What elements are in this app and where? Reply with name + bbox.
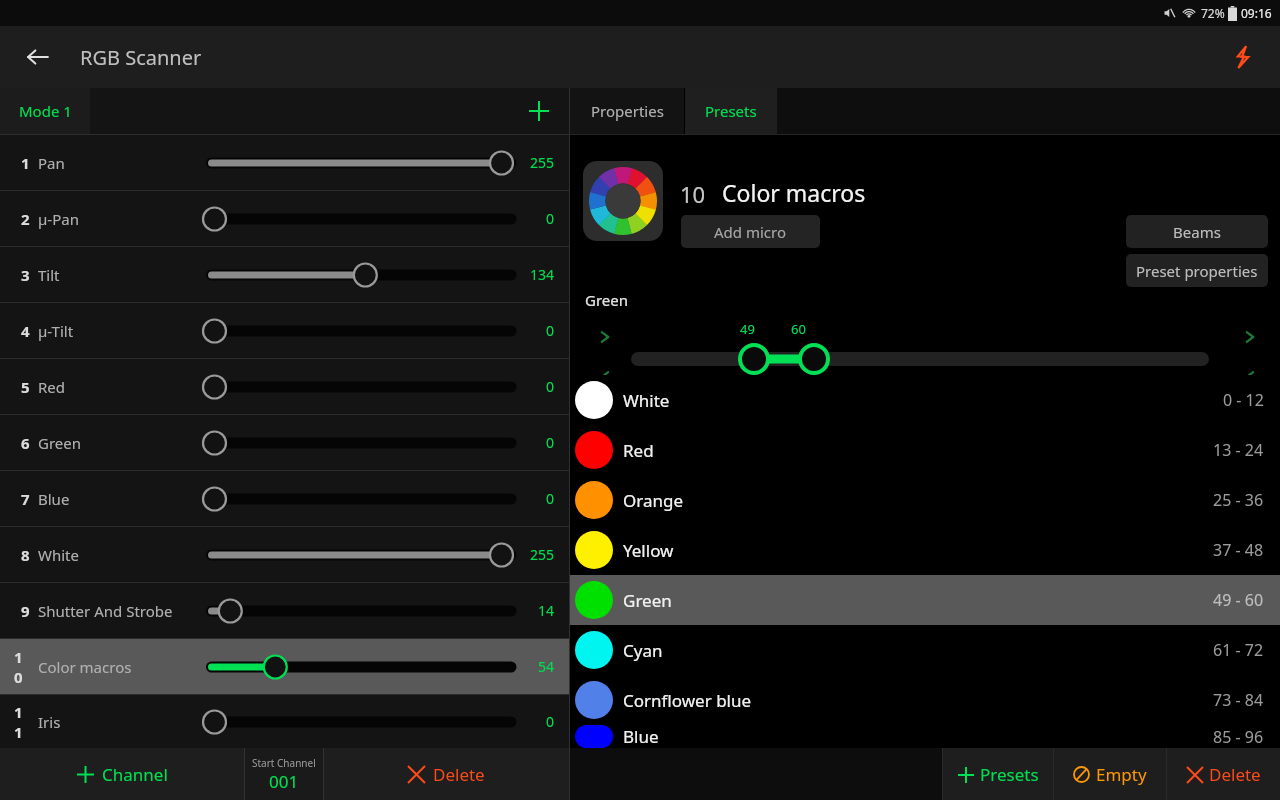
button[interactable]: 11 xyxy=(0,695,569,748)
staticText: Cornflower blue xyxy=(623,689,752,712)
staticText: 7 xyxy=(21,489,30,509)
staticText: µ-Tilt xyxy=(38,321,74,341)
button[interactable]: Channel xyxy=(0,748,244,800)
staticText: µ-Pan xyxy=(38,209,79,229)
staticText: White xyxy=(38,545,79,565)
staticText: 72% xyxy=(1201,5,1225,21)
button[interactable]: Green xyxy=(570,575,1280,625)
button[interactable]: 8 xyxy=(0,527,569,582)
staticText: Iris xyxy=(38,712,61,732)
button[interactable]: Next right xyxy=(1235,322,1265,352)
staticText: 60 xyxy=(791,320,806,338)
staticText: Presets xyxy=(980,763,1039,786)
button[interactable]: 5 xyxy=(0,359,569,414)
staticText: Empty xyxy=(1096,763,1147,786)
staticText: White xyxy=(623,389,670,412)
button[interactable]: White xyxy=(570,375,1280,425)
button[interactable]: 1 xyxy=(0,135,569,190)
button[interactable]: 3 xyxy=(0,247,569,302)
staticText: 54 xyxy=(538,657,555,676)
button[interactable]: Beams xyxy=(1126,215,1268,248)
button[interactable]: Color wheel xyxy=(583,161,663,241)
staticText: 9 xyxy=(21,601,30,621)
staticText: Mode 1 xyxy=(19,101,72,121)
staticText: Channel xyxy=(102,763,168,786)
staticText: 3 xyxy=(21,265,30,285)
staticText: 0 xyxy=(546,377,555,396)
staticText: 0 - 12 xyxy=(1223,389,1264,411)
button[interactable]: Yellow xyxy=(570,525,1280,575)
staticText: 0 xyxy=(546,209,555,228)
button[interactable]: Mode 1 xyxy=(0,88,90,134)
staticText: 0 xyxy=(546,489,555,508)
staticText: 10 xyxy=(14,647,30,687)
button[interactable]: Previous xyxy=(590,362,620,392)
staticText: RGB Scanner xyxy=(80,44,202,71)
staticText: Pan xyxy=(38,153,65,173)
staticText: 73 - 84 xyxy=(1213,689,1264,711)
staticText: 8 xyxy=(21,545,30,565)
staticText: 49 xyxy=(740,320,755,338)
staticText: 13 - 24 xyxy=(1213,439,1264,461)
staticText: Color macros xyxy=(38,657,132,677)
button[interactable]: 9 xyxy=(0,583,569,638)
button[interactable]: Blue xyxy=(570,725,1280,748)
staticText: 25 - 36 xyxy=(1213,489,1264,511)
staticText: 14 xyxy=(538,601,555,620)
staticText: 2 xyxy=(21,209,30,229)
staticText: Yellow xyxy=(623,539,674,562)
staticText: Red xyxy=(38,377,66,397)
staticText: Green xyxy=(585,290,629,310)
button[interactable]: Back xyxy=(18,37,58,77)
button[interactable]: Properties xyxy=(570,88,684,134)
staticText: Properties xyxy=(591,101,664,121)
staticText: 1 xyxy=(21,153,30,173)
button[interactable]: Add micro xyxy=(681,215,820,248)
button[interactable]: Red xyxy=(570,425,1280,475)
staticText: Start Channel xyxy=(252,756,316,770)
staticText: Orange xyxy=(623,489,684,512)
staticText: Green xyxy=(38,433,82,453)
button[interactable]: Cornflower blue xyxy=(570,675,1280,725)
staticText: 5 xyxy=(21,377,30,397)
button[interactable]: Presets xyxy=(685,88,777,134)
button[interactable]: 2 xyxy=(0,191,569,246)
button[interactable]: Empty xyxy=(1054,748,1166,800)
button[interactable]: Flash xyxy=(1222,36,1264,78)
button[interactable]: Next xyxy=(590,322,620,352)
staticText: 0 xyxy=(546,433,555,452)
staticText: 4 xyxy=(21,321,30,341)
staticText: Presets xyxy=(705,101,757,121)
staticText: Beams xyxy=(1173,222,1221,242)
button[interactable]: Preset properties xyxy=(1126,254,1268,287)
staticText: Blue xyxy=(623,725,659,748)
staticText: 37 - 48 xyxy=(1213,539,1264,561)
staticText: Red xyxy=(623,439,654,462)
button[interactable]: 7 xyxy=(0,471,569,526)
staticText: 49 - 60 xyxy=(1213,589,1264,611)
staticText: Cyan xyxy=(623,639,663,662)
button[interactable]: Delete xyxy=(1167,748,1280,800)
staticText: 0 xyxy=(546,712,555,731)
button[interactable]: 10 xyxy=(0,639,569,694)
staticText: Shutter And Strobe xyxy=(38,601,173,621)
staticText: 10 xyxy=(680,179,706,209)
button[interactable]: Add mode xyxy=(519,91,559,131)
button[interactable]: Delete xyxy=(324,748,569,800)
staticText: 11 xyxy=(14,702,30,742)
staticText: Add micro xyxy=(714,222,787,242)
staticText: 134 xyxy=(530,265,555,284)
button[interactable]: Previous right xyxy=(1235,362,1265,392)
button[interactable]: Orange xyxy=(570,475,1280,525)
button[interactable]: 4 xyxy=(0,303,569,358)
staticText: 0 xyxy=(546,321,555,340)
button[interactable]: Presets xyxy=(943,748,1053,800)
staticText: Delete xyxy=(1209,763,1261,786)
staticText: Delete xyxy=(433,763,485,786)
staticText: Blue xyxy=(38,489,70,509)
button[interactable]: 6 xyxy=(0,415,569,470)
button[interactable]: Cyan xyxy=(570,625,1280,675)
staticText: 255 xyxy=(530,545,555,564)
staticText: 85 - 96 xyxy=(1213,726,1264,748)
button[interactable]: Start Channel xyxy=(245,748,323,800)
